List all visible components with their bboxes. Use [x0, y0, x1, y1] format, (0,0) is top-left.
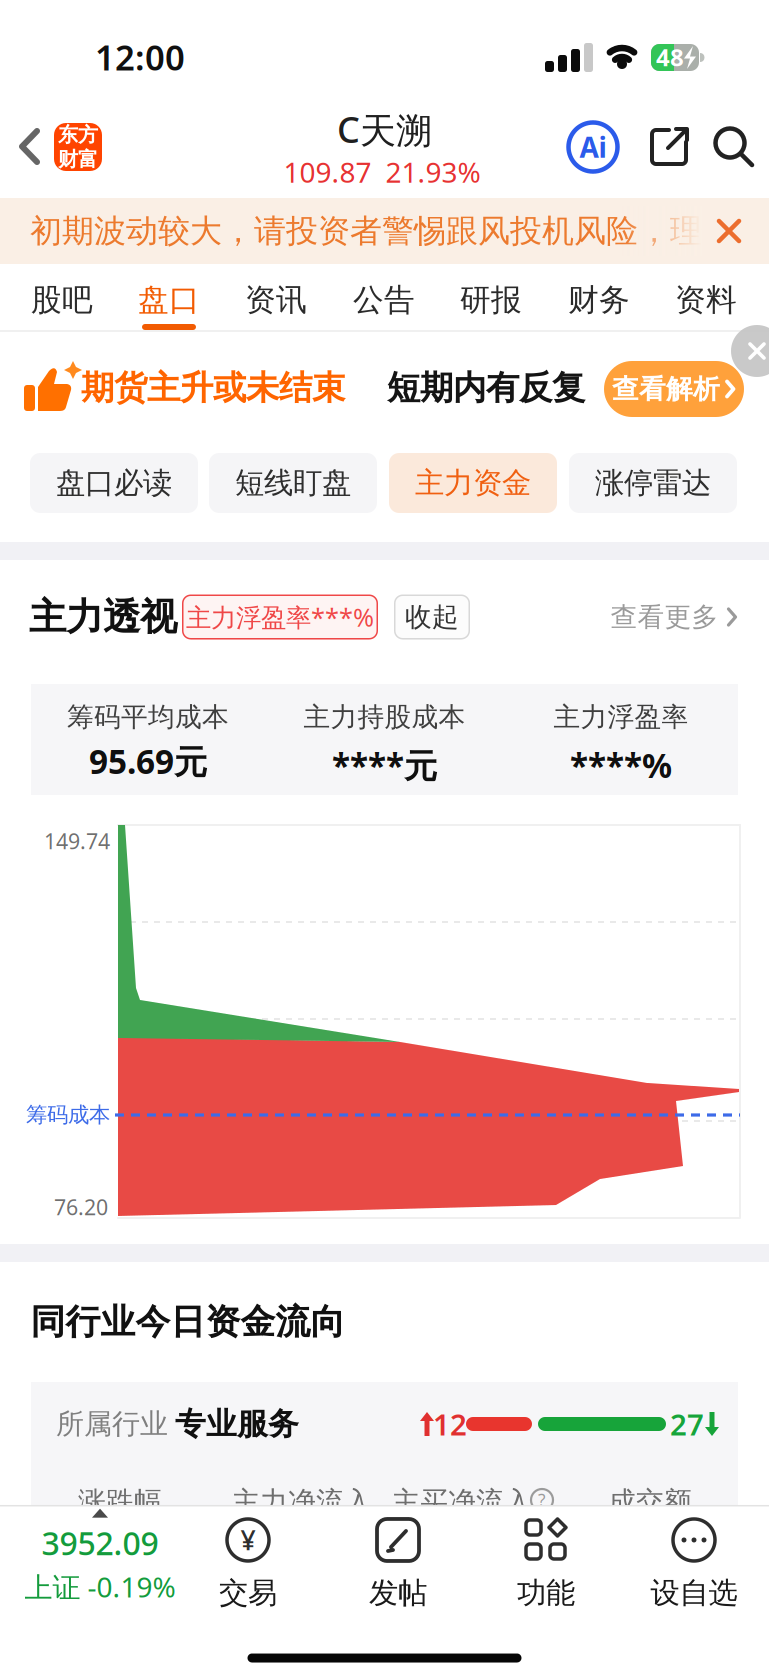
staticText: 财富	[58, 147, 98, 172]
staticText: 所属行业	[56, 1407, 168, 1441]
staticText: 资讯	[245, 281, 307, 319]
button[interactable]: 研报	[441, 268, 541, 332]
button[interactable]: 短线盯盘	[209, 453, 377, 513]
button[interactable]: 涨停雷达	[569, 453, 737, 513]
button[interactable]: 股吧	[12, 268, 112, 332]
staticText: Ai	[579, 128, 606, 166]
staticText: 短期内有反复	[387, 367, 585, 408]
staticText: 收起	[405, 601, 459, 633]
staticText: 成交额	[608, 1485, 692, 1519]
staticText: 盘口必读	[56, 465, 172, 501]
staticText: 3952.09	[41, 1522, 158, 1564]
staticText: 主力浮盈率	[553, 701, 688, 733]
staticText: 主力浮盈率***%	[186, 600, 374, 634]
staticText: 交易	[219, 1575, 277, 1611]
button[interactable]: 交易	[219, 1517, 277, 1611]
staticText: ****元	[332, 743, 437, 787]
staticText: 涨停雷达	[595, 465, 711, 501]
staticText: C天溯	[337, 105, 432, 153]
staticText: 主力资金	[415, 465, 531, 501]
staticText: 发帖	[369, 1575, 427, 1611]
button[interactable]: 关闭	[731, 325, 769, 377]
button[interactable]: 资料	[656, 268, 756, 332]
staticText: 短线盯盘	[235, 465, 351, 501]
staticText: 主买净流入	[392, 1485, 532, 1519]
staticText: 95.69元	[89, 739, 207, 783]
staticText: 初期波动较大，请投资者警惕跟风投机风险，理性投资	[30, 211, 769, 251]
button[interactable]: 盘口必读	[30, 453, 198, 513]
staticText: 12	[433, 1404, 467, 1443]
staticText: 同行业今日资金流向	[30, 1301, 345, 1343]
button[interactable]: AI助手	[566, 120, 620, 174]
staticText: 公告	[353, 281, 415, 319]
staticText: 东方	[58, 122, 98, 147]
staticText: 主力持股成本	[303, 701, 465, 733]
button[interactable]: 设自选	[650, 1517, 737, 1611]
button[interactable]: 公告	[334, 268, 434, 332]
button[interactable]: Back	[20, 129, 40, 165]
button[interactable]: 关闭提示	[717, 219, 741, 243]
staticText: 查看更多	[610, 601, 718, 633]
staticText: 功能	[517, 1575, 575, 1611]
staticText: 48	[656, 41, 684, 73]
staticText: 主力净流入	[232, 1485, 372, 1519]
button[interactable]: Search	[713, 126, 755, 168]
button[interactable]: 东方财富	[54, 123, 102, 171]
staticText: 期货主升或未结束	[81, 367, 345, 408]
staticText: 研报	[460, 281, 522, 319]
button[interactable]: 发帖	[369, 1517, 427, 1611]
staticText: 设自选	[650, 1575, 737, 1611]
staticText: 筹码平均成本	[67, 701, 229, 733]
staticText: 筹码成本	[26, 1102, 110, 1128]
button[interactable]: Share	[649, 127, 689, 167]
staticText: 12:00	[95, 34, 185, 80]
staticText: 财务	[568, 281, 630, 319]
button[interactable]: 主买净流入说明	[529, 1487, 555, 1513]
staticText: 涨跌幅	[78, 1485, 162, 1519]
staticText: ¥	[240, 1522, 255, 1558]
staticText: 查看解析	[612, 373, 720, 405]
staticText: 盘口	[138, 281, 200, 319]
button[interactable]: 盘口	[119, 268, 219, 332]
button[interactable]: 收起	[394, 594, 470, 639]
staticText: 资料	[675, 281, 737, 319]
button[interactable]: 功能	[517, 1517, 575, 1611]
staticText: 主力透视	[29, 594, 177, 640]
button[interactable]: 资讯	[226, 268, 326, 332]
staticText: 专业服务	[175, 1405, 299, 1443]
staticText: 股吧	[31, 281, 93, 319]
button[interactable]: 查看更多	[610, 601, 737, 633]
button[interactable]: 主力资金	[389, 453, 557, 513]
button[interactable]: 财务	[549, 268, 649, 332]
staticText: 上证 -0.19%	[24, 1568, 175, 1605]
button[interactable]: 查看解析	[604, 361, 744, 417]
staticText: 76.20	[54, 1193, 108, 1221]
staticText: 27	[670, 1404, 704, 1443]
staticText: ?	[538, 1488, 546, 1511]
staticText: ****%	[570, 743, 672, 787]
button[interactable]: 上证指数	[24, 1509, 175, 1605]
staticText: 149.74	[44, 827, 110, 855]
staticText: 109.87 21.93%	[283, 153, 480, 191]
